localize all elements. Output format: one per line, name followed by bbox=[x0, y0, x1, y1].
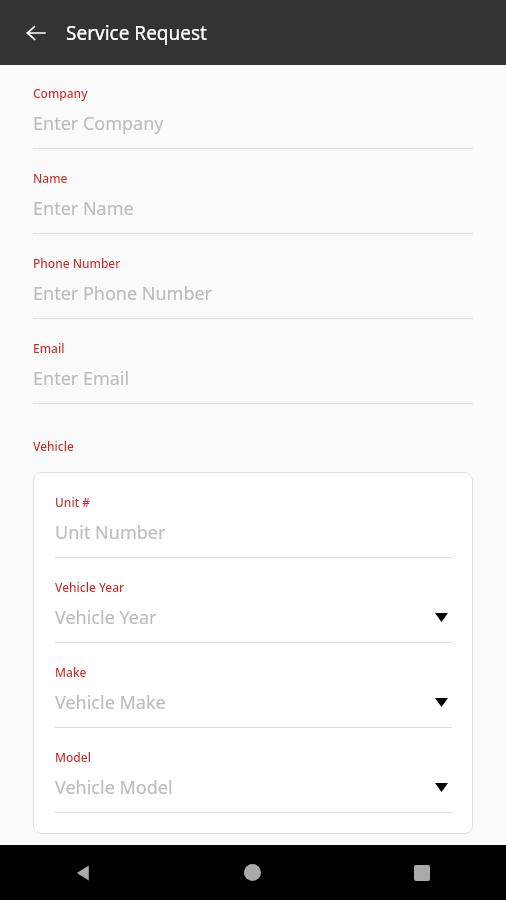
staticText: Phone Number bbox=[33, 255, 121, 271]
staticText: Vehicle Model bbox=[55, 775, 439, 800]
button[interactable]: Model bbox=[55, 749, 452, 834]
button[interactable]: Make bbox=[55, 664, 452, 749]
button[interactable]: Name bbox=[0, 170, 506, 255]
staticText: Enter Company bbox=[33, 111, 164, 136]
button[interactable]: Company bbox=[0, 85, 506, 170]
staticText: Vehicle bbox=[33, 438, 74, 454]
staticText: Vehicle Year bbox=[55, 579, 125, 595]
button[interactable]: Home bbox=[168, 845, 337, 900]
button[interactable]: Recent apps bbox=[337, 845, 506, 900]
staticText: Vehicle Make bbox=[55, 690, 439, 715]
button[interactable]: Unit # bbox=[55, 494, 452, 579]
staticText: Unit # bbox=[55, 494, 91, 510]
staticText: Vehicle Year bbox=[55, 605, 439, 630]
staticText: Email bbox=[33, 340, 65, 356]
button[interactable]: Vehicle Year bbox=[55, 579, 452, 664]
staticText: Name bbox=[33, 170, 68, 186]
staticText: Enter Phone Number bbox=[33, 281, 213, 306]
staticText: Unit Number bbox=[55, 520, 452, 545]
staticText: Service Request bbox=[66, 20, 207, 46]
button[interactable]: Phone Number bbox=[0, 255, 506, 340]
staticText: Company bbox=[33, 85, 88, 101]
staticText: Enter Email bbox=[33, 366, 130, 391]
button[interactable]: Email bbox=[0, 340, 506, 425]
staticText: Model bbox=[55, 749, 91, 765]
button[interactable]: Back bbox=[0, 845, 168, 900]
staticText: Make bbox=[55, 664, 87, 680]
button[interactable]: Back bbox=[14, 11, 58, 55]
staticText: Enter Name bbox=[33, 196, 134, 221]
